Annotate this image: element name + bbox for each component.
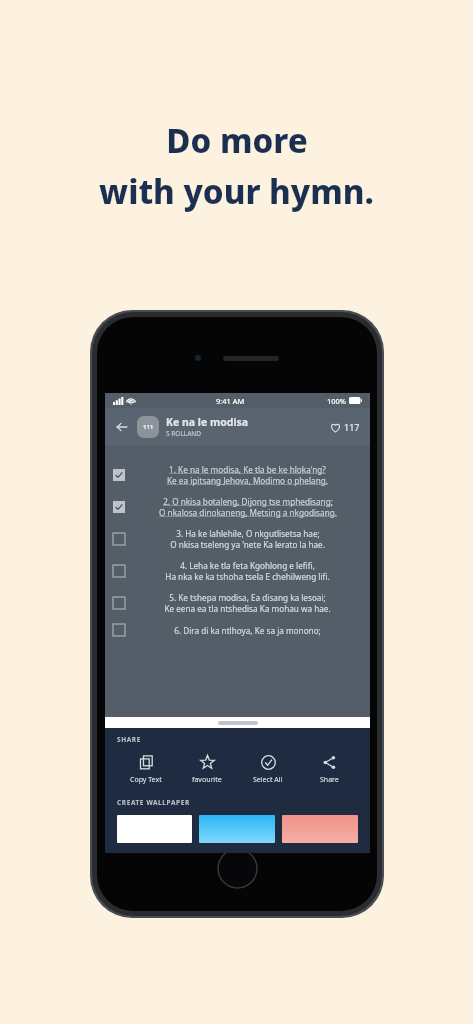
staticText: with your hymn. bbox=[99, 169, 374, 214]
staticText: 9:41 AM bbox=[216, 396, 245, 406]
staticText: 1. Ke na le modisa, Ke tla be ke hloka'n… bbox=[169, 464, 326, 475]
button[interactable]: Select verse bbox=[113, 624, 125, 636]
staticText: O nkalosa dinokaneng, Metsing a nkgodisa… bbox=[159, 507, 337, 518]
staticText: Ke eena ea tla ntshedisa Ka mohau wa hae… bbox=[164, 603, 331, 614]
staticText: Select All bbox=[253, 775, 283, 785]
button[interactable]: Select verse bbox=[113, 533, 125, 545]
button[interactable]: Select verse bbox=[105, 491, 370, 523]
staticText: 6. Dira di ka ntlhoya, Ke sa ja monono; bbox=[174, 625, 321, 636]
staticText: S ROLLAND bbox=[166, 429, 202, 438]
button[interactable]: Select verse bbox=[105, 587, 370, 619]
button[interactable]: Wallpaper colour bbox=[282, 815, 358, 843]
staticText: CREATE WALLPAPER bbox=[117, 798, 190, 807]
button[interactable]: Wallpaper colour bbox=[199, 815, 275, 843]
staticText: Ke na le modisa bbox=[166, 415, 249, 429]
button[interactable]: Select verse bbox=[105, 619, 370, 641]
button[interactable]: favourite bbox=[178, 754, 236, 786]
staticText: 100% bbox=[327, 396, 347, 406]
button[interactable]: Select verse bbox=[105, 523, 370, 555]
staticText: 117 bbox=[344, 421, 360, 433]
button[interactable]: Back bbox=[113, 418, 131, 436]
staticText: 3. Ha ke lahlehile, O nkgutlisetsa hae; bbox=[176, 528, 320, 539]
staticText: Share bbox=[320, 775, 339, 785]
other: Home bbox=[217, 848, 258, 889]
button[interactable]: Share bbox=[300, 754, 358, 786]
button[interactable]: Select verse bbox=[105, 459, 370, 491]
button[interactable]: Select verse bbox=[113, 501, 125, 513]
staticText: Copy Text bbox=[130, 775, 162, 785]
button[interactable]: Select verse bbox=[113, 597, 125, 609]
staticText: 4. Leha ke tla feta Kgohlong e lefifi, bbox=[180, 560, 315, 571]
staticText: SHARE bbox=[117, 735, 141, 744]
button[interactable]: Select All bbox=[239, 754, 297, 786]
staticText: 2. O nkisa botaleng, Dijong tse mphedisa… bbox=[163, 496, 333, 507]
button[interactable]: Select verse bbox=[105, 555, 370, 587]
button[interactable]: 117 bbox=[328, 421, 362, 433]
button[interactable]: Select verse bbox=[113, 469, 125, 481]
button[interactable]: Select verse bbox=[113, 565, 125, 577]
staticText: Ke ea ipitsang Jehova, Modimo o phelang. bbox=[167, 475, 328, 486]
staticText: 111 bbox=[143, 423, 154, 431]
staticText: O nkisa tseleng ya 'nete Ka lerato la ha… bbox=[170, 539, 325, 550]
staticText: Ha nka ke ka tshoha tsela E chehilweng l… bbox=[165, 571, 330, 582]
staticText: favourite bbox=[192, 775, 222, 785]
staticText: Do more bbox=[166, 118, 308, 163]
staticText: 5. Ke tshepa modisa, Ea disang ka lesoai… bbox=[169, 592, 326, 603]
button[interactable]: Copy Text bbox=[117, 754, 175, 786]
